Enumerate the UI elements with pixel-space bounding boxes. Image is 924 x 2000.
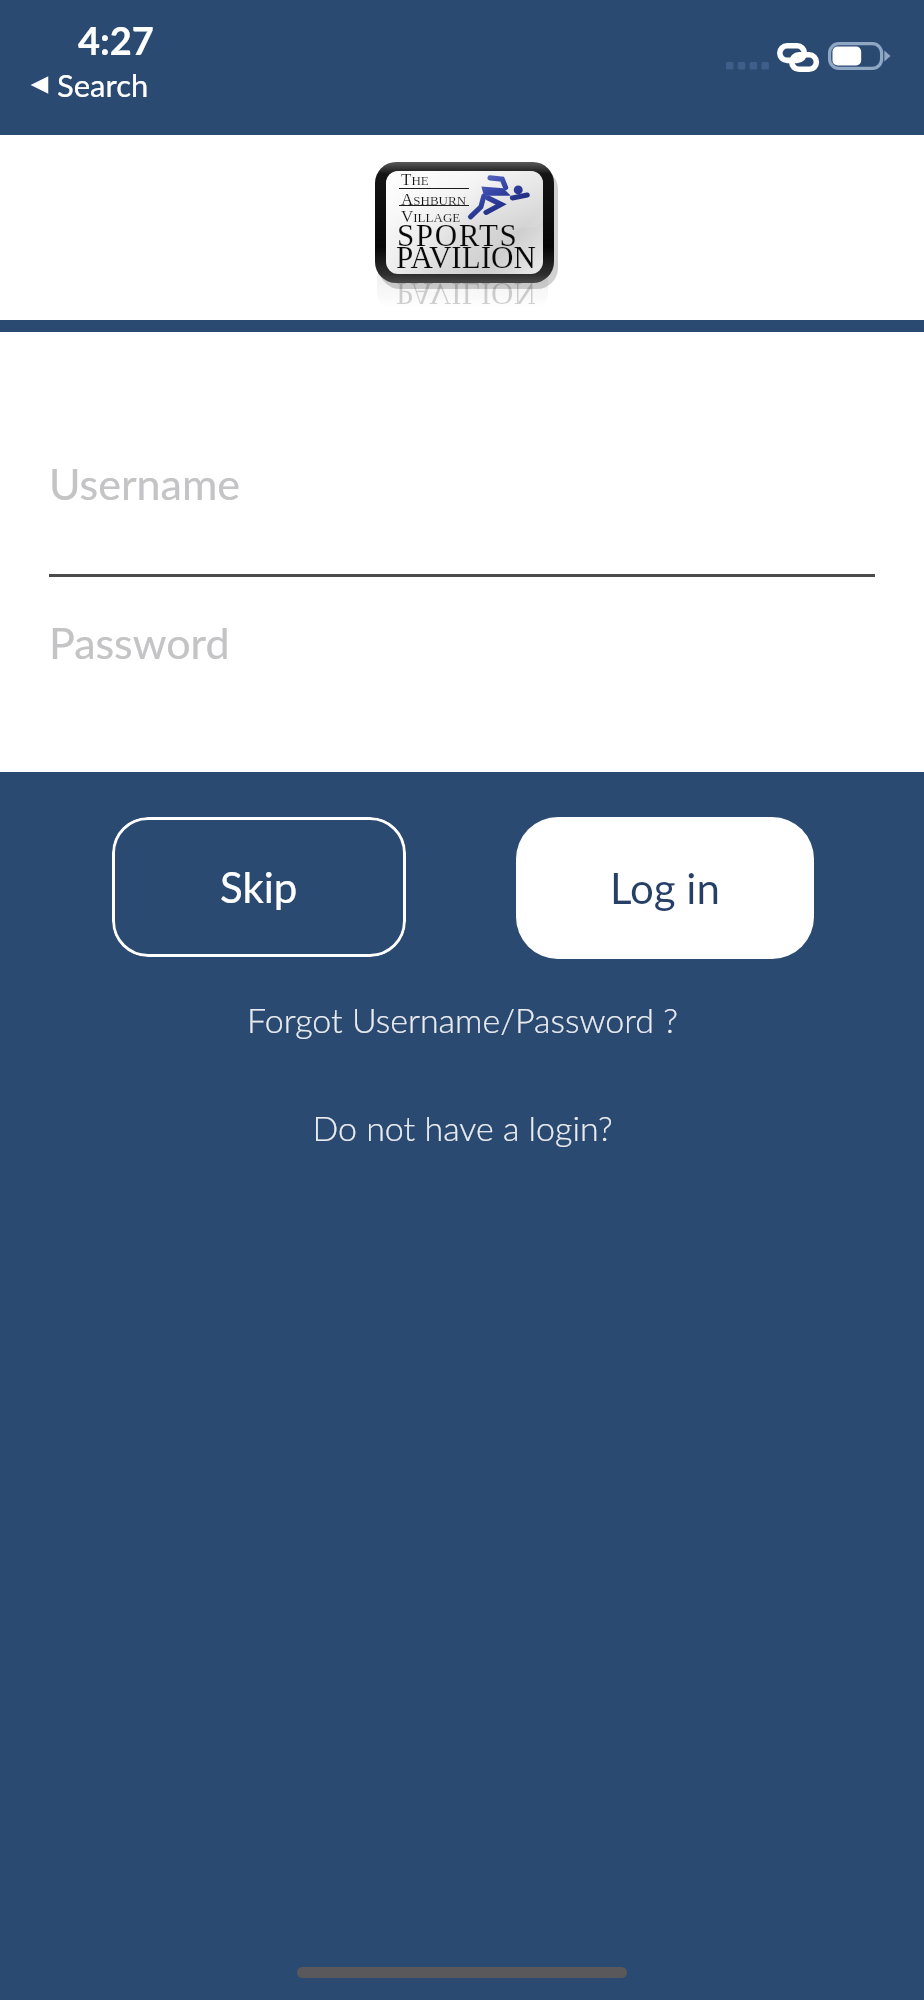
button[interactable]: Password: [49, 593, 875, 693]
staticText: PAVILION: [396, 277, 536, 311]
staticText: Skip: [220, 862, 298, 912]
button[interactable]: Username: [49, 434, 875, 534]
button[interactable]: Back to Search: [28, 66, 149, 103]
staticText: THE: [401, 170, 429, 189]
staticText: Search: [57, 66, 149, 103]
other: Linked: [777, 43, 818, 71]
button[interactable]: Forgot Username/Password ?: [237, 993, 688, 1046]
staticText: Password: [49, 617, 230, 669]
button[interactable]: Skip: [112, 817, 406, 957]
staticText: SPORTS: [397, 218, 519, 252]
staticText: Do not have a login?: [312, 1107, 613, 1148]
staticText: Log in: [610, 863, 720, 913]
button[interactable]: Do not have a login?: [302, 1101, 623, 1154]
staticText: PAVILION: [396, 240, 536, 274]
staticText: Forgot Username/Password ?: [247, 999, 678, 1040]
staticText: VILLAGE: [401, 207, 461, 226]
staticText: ASHBURN: [401, 190, 467, 209]
staticText: Username: [49, 458, 241, 510]
other: Battery: [828, 42, 888, 70]
button[interactable]: Log in: [516, 817, 814, 959]
staticText: 4:27: [78, 17, 154, 63]
